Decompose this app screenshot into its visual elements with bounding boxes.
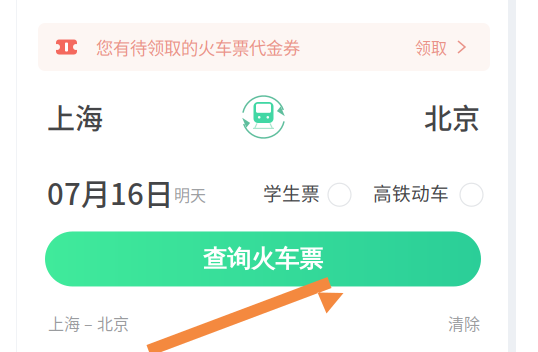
staticText: 明天 bbox=[174, 183, 206, 206]
staticText: 领取 bbox=[415, 35, 447, 59]
staticText: 清除 bbox=[448, 311, 480, 335]
button[interactable]: 您有待领取的火车票代金券 bbox=[17, 23, 508, 71]
button[interactable]: 查询火车票 bbox=[17, 231, 508, 286]
button[interactable]: 上海 – 北京 bbox=[48, 311, 129, 335]
button[interactable]: 清除 bbox=[448, 311, 480, 335]
staticText: 上海 bbox=[47, 97, 103, 137]
staticText: 07月16日 bbox=[47, 171, 173, 213]
button[interactable]: 学生票 bbox=[263, 178, 351, 206]
staticText: 上海 – 北京 bbox=[48, 311, 129, 335]
button[interactable]: Swap departure and arrival stations bbox=[238, 92, 288, 142]
button[interactable]: 上海 bbox=[47, 97, 103, 137]
staticText: 您有待领取的火车票代金券 bbox=[96, 34, 300, 60]
button[interactable]: 07月16日 bbox=[47, 171, 206, 213]
staticText: 北京 bbox=[424, 97, 480, 137]
button[interactable]: 高铁动车 bbox=[373, 178, 483, 206]
button[interactable]: 北京 bbox=[424, 97, 480, 137]
staticText: 学生票 bbox=[263, 179, 320, 206]
staticText: 查询火车票 bbox=[203, 244, 323, 274]
staticText: 高铁动车 bbox=[373, 179, 449, 206]
